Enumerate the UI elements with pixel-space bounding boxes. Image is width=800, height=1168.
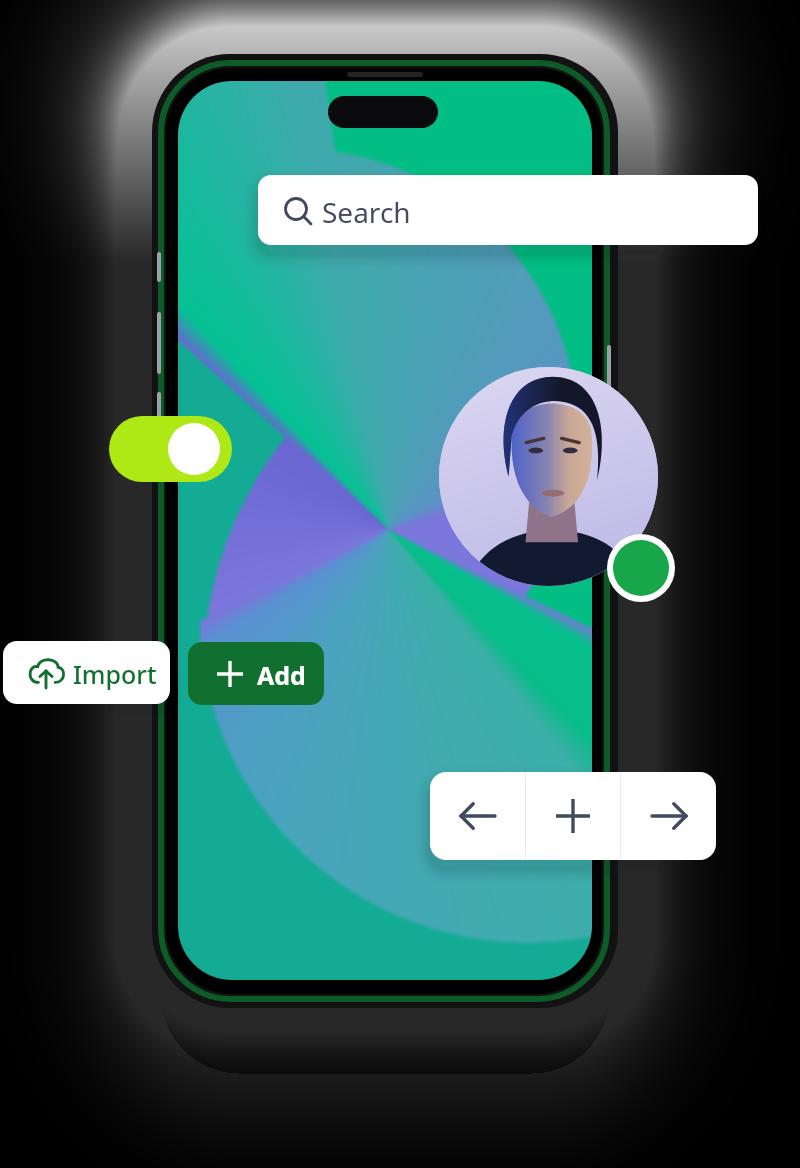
staticText: Search — [322, 193, 411, 231]
button[interactable]: Add — [188, 642, 324, 705]
staticText: Import — [73, 657, 157, 691]
button[interactable]: Back — [430, 772, 525, 860]
staticText: Add — [257, 658, 306, 692]
button[interactable]: Profile photo — [439, 367, 658, 586]
button[interactable]: Toggle — [109, 416, 232, 482]
button[interactable]: Import — [3, 641, 170, 704]
button[interactable]: Search — [258, 175, 758, 245]
button[interactable]: Forward — [621, 772, 716, 860]
button[interactable]: Add — [526, 772, 620, 860]
button[interactable]: Online status — [607, 534, 675, 602]
